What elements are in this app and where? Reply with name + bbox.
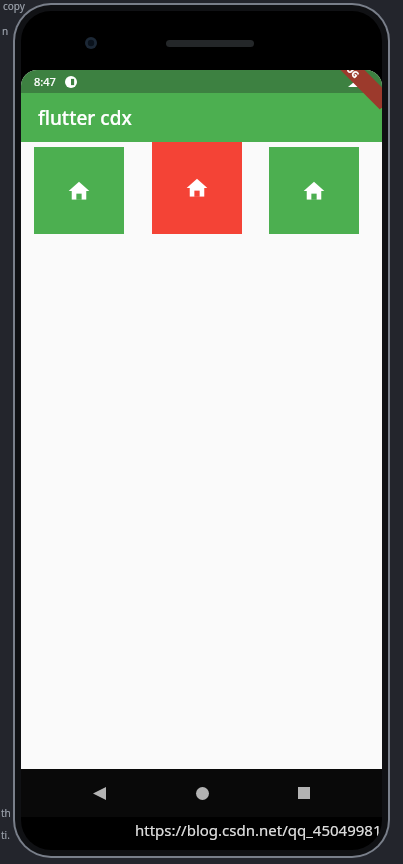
button[interactable]: Back xyxy=(75,769,123,817)
staticText: https://blog.csdn.net/qq_45049981 xyxy=(135,820,382,840)
staticText: flutter cdx xyxy=(38,105,132,131)
staticText: copy xyxy=(3,0,25,13)
button[interactable]: Home xyxy=(269,147,359,234)
button[interactable]: Home xyxy=(178,769,226,817)
button[interactable]: Recent apps xyxy=(280,769,328,817)
staticText: 8:47 xyxy=(34,74,56,89)
button[interactable]: Home xyxy=(152,142,242,234)
button[interactable]: Home xyxy=(34,147,124,234)
staticText: n xyxy=(2,24,9,38)
staticText: th xyxy=(1,806,11,820)
staticText: DEBUG xyxy=(332,70,362,80)
staticText: ti. xyxy=(1,828,10,842)
